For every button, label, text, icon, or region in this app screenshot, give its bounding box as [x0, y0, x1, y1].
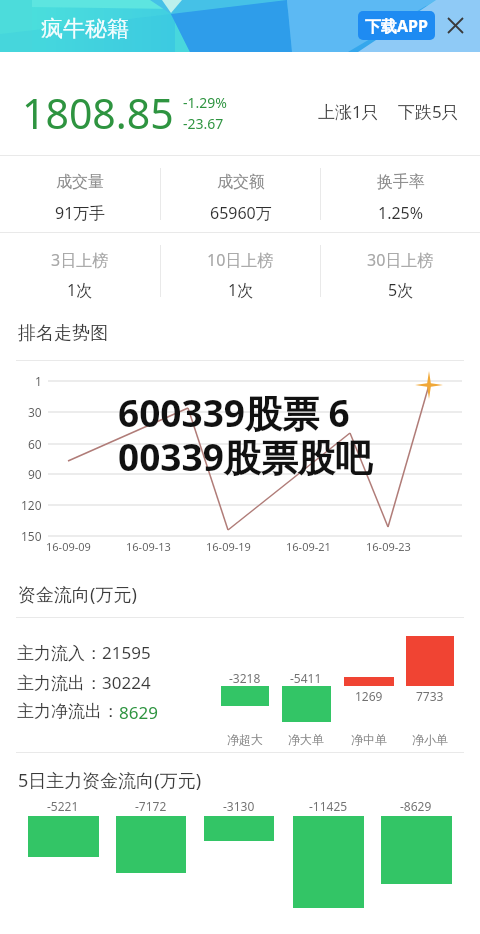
staticText: 成交量	[56, 172, 104, 192]
staticText: 120	[21, 497, 42, 513]
staticText: 净大单	[288, 732, 324, 747]
staticText: 1269	[355, 688, 383, 704]
staticText: -11425	[309, 798, 348, 814]
staticText: 150	[21, 528, 42, 544]
staticText: 1808.85	[22, 85, 174, 141]
staticText: 16-09-13	[126, 539, 171, 554]
staticText: 91万手	[55, 202, 106, 224]
button[interactable]: 疯牛秘籍	[0, 0, 480, 52]
staticText: 成交额	[217, 172, 265, 192]
button[interactable]: Close	[447, 17, 464, 34]
staticText: -3130	[223, 798, 255, 814]
staticText: 疯牛秘籍	[41, 15, 129, 43]
staticText: -3218	[229, 670, 261, 686]
staticText: 30日上榜	[367, 249, 434, 271]
staticText: 8629	[119, 701, 158, 724]
staticText: 5日主力资金流向(万元)	[18, 768, 202, 793]
staticText: 7733	[416, 688, 444, 704]
staticText: 65960万	[210, 202, 272, 224]
staticText: 资金流向(万元)	[18, 582, 137, 607]
staticText: 1	[35, 373, 42, 389]
staticText: -5221	[47, 798, 79, 814]
staticText: 主力净流出：	[17, 701, 119, 722]
staticText: 5次	[388, 279, 414, 301]
button[interactable]: 成交量	[0, 155, 160, 232]
staticText: 净中单	[351, 732, 387, 747]
staticText: -23.67	[183, 114, 224, 133]
staticText: -1.29%	[183, 93, 227, 112]
button[interactable]: 成交额	[161, 155, 320, 232]
staticText: -7172	[135, 798, 167, 814]
button[interactable]: 30日上榜	[321, 232, 480, 309]
button[interactable]: 下载APP	[358, 11, 435, 40]
staticText: 排名走势图	[18, 322, 108, 345]
staticText: 下跌5只	[398, 100, 459, 123]
staticText: 上涨1只	[318, 100, 379, 123]
staticText: 16-09-23	[366, 539, 411, 554]
button[interactable]: 10日上榜	[161, 232, 320, 309]
button[interactable]: 3日上榜	[0, 232, 160, 309]
staticText: 主力流出：30224	[17, 671, 151, 694]
staticText: 00339股票股吧	[118, 431, 372, 482]
staticText: 600339股票 6	[118, 387, 350, 438]
staticText: 1次	[67, 279, 93, 301]
staticText: 主力流入：21595	[17, 641, 151, 664]
staticText: 1.25%	[378, 202, 424, 224]
staticText: 10日上榜	[207, 249, 274, 271]
staticText: 净超大	[227, 732, 263, 747]
staticText: 16-09-21	[286, 539, 331, 554]
staticText: 16-09-09	[46, 539, 91, 554]
staticText: 90	[28, 466, 42, 482]
staticText: 下载APP	[365, 15, 428, 37]
staticText: 16-09-19	[206, 539, 251, 554]
staticText: -5411	[290, 670, 322, 686]
staticText: 30	[28, 404, 42, 420]
staticText: -8629	[400, 798, 432, 814]
staticText: 60	[28, 436, 42, 452]
staticText: 1次	[228, 279, 254, 301]
staticText: 净小单	[412, 732, 448, 747]
button[interactable]: 换手率	[321, 155, 480, 232]
staticText: 3日上榜	[51, 249, 109, 271]
staticText: 换手率	[377, 172, 425, 192]
